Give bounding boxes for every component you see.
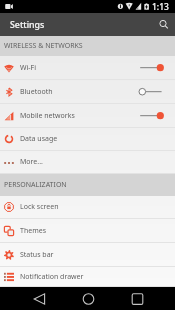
- staticText: Notification drawer: [20, 272, 84, 282]
- button[interactable]: Off: [139, 80, 175, 103]
- button[interactable]: Search: [152, 13, 175, 36]
- button[interactable]: Back: [27, 287, 52, 310]
- button[interactable]: Mobile networks: [0, 104, 175, 128]
- button[interactable]: Wi-Fi: [0, 56, 175, 80]
- staticText: Wi-Fi: [20, 63, 37, 73]
- staticText: Mobile networks: [20, 111, 75, 121]
- staticText: WIRELESS & NETWORKS: [4, 41, 83, 51]
- button[interactable]: Home: [76, 287, 101, 310]
- staticText: Bluetooth: [20, 87, 53, 97]
- button[interactable]: Data usage: [0, 128, 175, 151]
- button[interactable]: Notification drawer: [0, 267, 175, 287]
- staticText: Lock screen: [20, 202, 59, 212]
- button[interactable]: More...: [0, 151, 175, 174]
- staticText: More...: [20, 157, 43, 167]
- staticText: Status bar: [20, 250, 54, 260]
- button[interactable]: On: [139, 104, 175, 127]
- staticText: PERSONALIZATION: [4, 180, 67, 190]
- staticText: Data usage: [20, 134, 58, 144]
- button[interactable]: On: [139, 56, 175, 79]
- staticText: Themes: [20, 226, 47, 236]
- button[interactable]: Status bar: [0, 243, 175, 267]
- button[interactable]: Lock screen: [0, 196, 175, 219]
- staticText: 1:13: [152, 1, 169, 13]
- button[interactable]: Themes: [0, 219, 175, 243]
- button[interactable]: Bluetooth: [0, 80, 175, 104]
- button[interactable]: Recents: [125, 287, 150, 310]
- staticText: Settings: [10, 19, 45, 31]
